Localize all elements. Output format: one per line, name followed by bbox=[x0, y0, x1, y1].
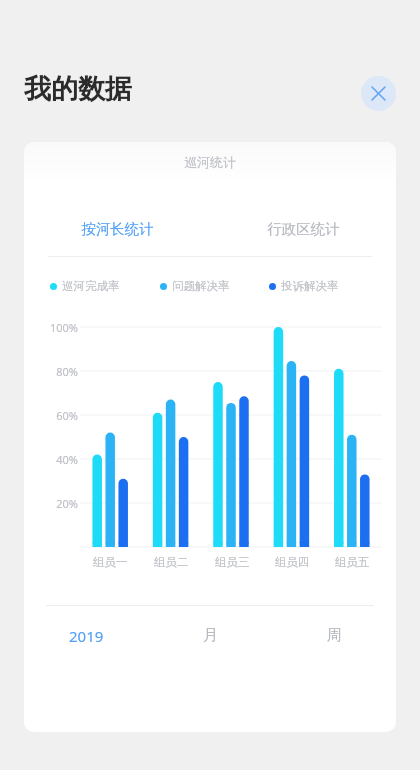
staticText: 按河长统计 bbox=[81, 220, 154, 238]
staticText: 行政区统计 bbox=[267, 220, 340, 238]
staticText: 40% bbox=[40, 452, 78, 467]
button[interactable]: 2019 bbox=[24, 626, 148, 646]
staticText: 2019 bbox=[69, 626, 104, 646]
staticText: 巡河统计 bbox=[184, 154, 236, 170]
staticText: 20% bbox=[40, 496, 78, 511]
button[interactable]: 月 bbox=[148, 626, 272, 645]
staticText: 投诉解决率 bbox=[281, 279, 339, 293]
staticText: 80% bbox=[40, 364, 78, 379]
staticText: 组员三 bbox=[215, 555, 250, 569]
staticText: 月 bbox=[203, 626, 218, 645]
staticText: 组员五 bbox=[335, 555, 370, 569]
button[interactable]: 行政区统计 bbox=[210, 220, 396, 238]
staticText: 周 bbox=[327, 626, 342, 645]
staticText: 问题解决率 bbox=[172, 279, 230, 293]
staticText: 巡河完成率 bbox=[62, 279, 120, 293]
staticText: 我的数据 bbox=[24, 72, 132, 106]
staticText: 组员二 bbox=[154, 555, 189, 569]
staticText: 组员四 bbox=[275, 555, 310, 569]
staticText: 60% bbox=[40, 408, 78, 423]
staticText: 组员一 bbox=[93, 555, 128, 569]
button[interactable]: 按河长统计 bbox=[24, 220, 210, 238]
button[interactable]: Close bbox=[361, 76, 396, 111]
button[interactable]: 周 bbox=[272, 626, 396, 645]
staticText: 100% bbox=[40, 320, 78, 335]
